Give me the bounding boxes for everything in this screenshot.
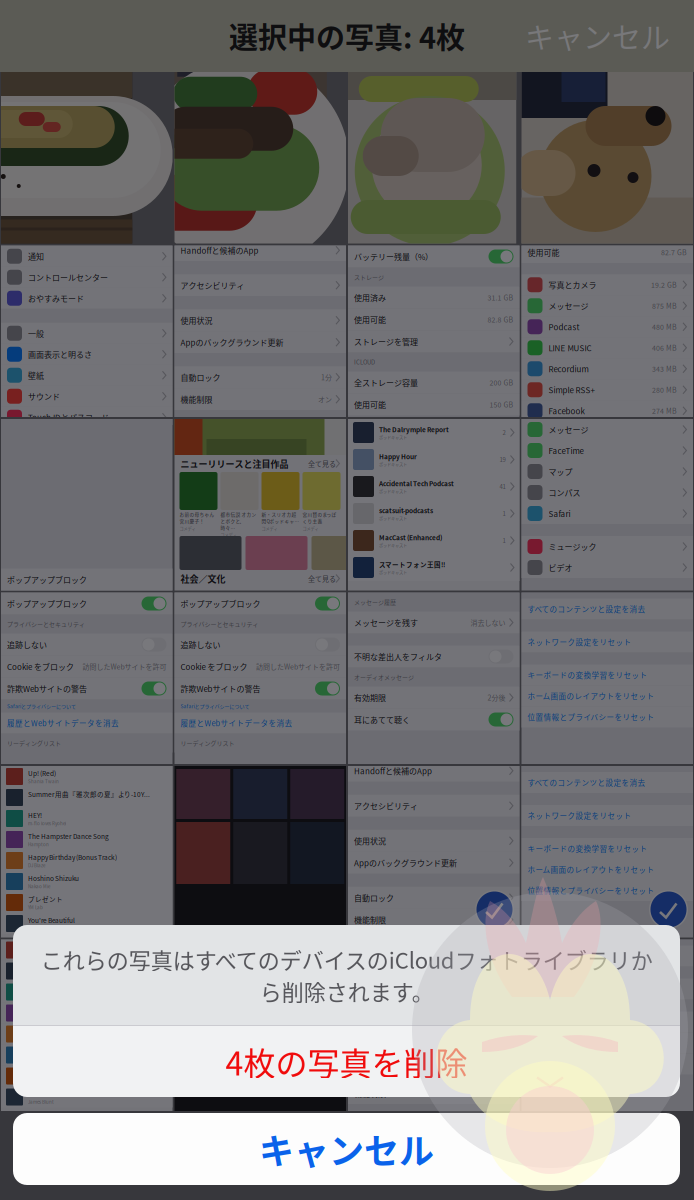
- staticText: すべてのコンテンツと設定を消去: [527, 604, 645, 614]
- staticText: 壁紙: [28, 369, 44, 381]
- staticText: FaceTime: [548, 445, 583, 456]
- staticText: Handoffと候補のApp: [354, 765, 432, 777]
- staticText: 詐欺Webサイトの警告: [7, 683, 87, 694]
- staticText: 訪問したWebサイトを許可: [256, 661, 340, 671]
- staticText: プライバシーとセキュリティ: [180, 620, 258, 628]
- staticText: 有効期限: [354, 692, 386, 703]
- staticText: 1分: [494, 893, 505, 903]
- staticText: 使用可能: [527, 246, 559, 258]
- staticText: コメディ: [179, 525, 195, 531]
- staticText: ポップアップブロック: [180, 598, 260, 609]
- staticText: Cookie をブロック: [7, 661, 74, 672]
- button[interactable]: キャンセル: [13, 1113, 680, 1185]
- staticText: You're Beautiful: [28, 915, 75, 925]
- staticText: すべてのコンテンツと設定を消去: [527, 951, 645, 961]
- staticText: 使用状況: [180, 314, 212, 326]
- staticText: 位置情報とプライバシーをリセット: [527, 712, 654, 722]
- staticText: Appのバックグラウンド更新: [354, 1030, 457, 1042]
- staticText: キャンセル: [525, 15, 670, 57]
- staticText: Recordium: [548, 363, 588, 375]
- staticText: 詐欺Webサイトの警告: [180, 683, 260, 694]
- staticText: Hoshino Shizuku: [28, 873, 79, 883]
- staticText: 280 MB: [652, 385, 677, 395]
- staticText: 19.2 GB: [651, 280, 677, 290]
- staticText: ポッドキャスト: [379, 542, 407, 548]
- staticText: 全て見る: [308, 573, 336, 583]
- staticText: The Dalrymple Report: [379, 425, 449, 434]
- staticText: Nakao Mie: [28, 883, 50, 889]
- staticText: Summer用曲『雅次郎の夏』より-10Y...: [28, 789, 150, 799]
- staticText: Safariとプライバシーについて: [180, 702, 249, 710]
- staticText: リーディングリスト: [7, 739, 61, 747]
- staticText: 2分後: [487, 692, 505, 702]
- staticText: Simple RSS+: [548, 384, 594, 396]
- staticText: 2: [502, 428, 505, 437]
- staticText: メッセージ: [548, 300, 588, 312]
- staticText: 全て見る: [308, 458, 336, 468]
- staticText: Happy Hour: [379, 452, 417, 461]
- staticText: m-flo loves Ryohei: [28, 820, 66, 826]
- staticText: 1: [502, 536, 505, 545]
- staticText: 使用可能: [354, 399, 386, 410]
- staticText: 1分: [321, 372, 332, 382]
- staticText: キャンセル: [259, 1124, 434, 1174]
- staticText: 19: [499, 455, 505, 464]
- staticText: 画面表示と明るさ: [28, 348, 92, 360]
- staticText: 自動ロック: [354, 1065, 394, 1077]
- staticText: ポッドキャスト: [379, 488, 407, 494]
- staticText: 82.8 GB: [487, 314, 513, 324]
- staticText: Shania Twain: [28, 778, 59, 784]
- staticText: リーディングリスト: [180, 739, 234, 747]
- staticText: The Hampster Dance Song: [28, 831, 109, 841]
- staticText: 406 MB: [652, 343, 677, 353]
- staticText: マップ: [548, 466, 572, 477]
- staticText: MacCast (Enhanced): [379, 533, 442, 542]
- staticText: アクセシビリティ: [354, 800, 418, 812]
- staticText: 機能制限: [180, 393, 212, 405]
- staticText: 使用済み: [354, 292, 386, 303]
- staticText: Safari: [548, 508, 570, 519]
- staticText: YM Lab: [28, 904, 43, 910]
- staticText: ポッドキャスト: [379, 515, 407, 521]
- staticText: ネットワーク設定をリセット: [527, 810, 631, 821]
- staticText: Summer用曲『雅次郎の夏』より-10Y...: [28, 963, 150, 972]
- staticText: 新・スリオカ超閃Qポッドキャ…: [261, 511, 299, 524]
- staticText: ポップアップブロック: [7, 598, 87, 609]
- staticText: 480 MB: [652, 322, 677, 332]
- staticText: メッセージを残す: [354, 617, 418, 628]
- staticText: 自動ロック: [180, 371, 220, 383]
- staticText: Appのバックグラウンド更新: [180, 336, 283, 348]
- staticText: 1: [502, 509, 505, 518]
- button[interactable]: キャンセル: [507, 0, 694, 72]
- staticText: メッセージ履歴: [354, 598, 396, 606]
- staticText: 追跡しない: [7, 639, 47, 650]
- staticText: 全ストレージ容量: [354, 377, 418, 388]
- staticText: ニューリリースと注目作品: [180, 457, 288, 470]
- staticText: サウンド: [28, 390, 60, 402]
- staticText: ポッドキャスト: [379, 569, 407, 575]
- staticText: LINE MUSIC: [548, 342, 591, 354]
- staticText: オン: [491, 915, 505, 925]
- staticText: 都市伝説 オカンとボクと、時々…: [220, 511, 256, 531]
- staticText: 一般: [28, 327, 44, 339]
- staticText: オーディオメッセージ: [354, 673, 414, 681]
- staticText: 82.7 GB: [661, 247, 687, 257]
- button[interactable]: 4枚の写真を削除: [13, 1026, 680, 1097]
- staticText: 875 MB: [652, 301, 677, 311]
- staticText: Up! (Red): [28, 768, 56, 778]
- staticText: 追跡しない: [180, 639, 220, 650]
- staticText: Facebook: [548, 405, 584, 417]
- staticText: DJ Blaze: [28, 862, 45, 868]
- staticText: ビデオ: [548, 562, 572, 573]
